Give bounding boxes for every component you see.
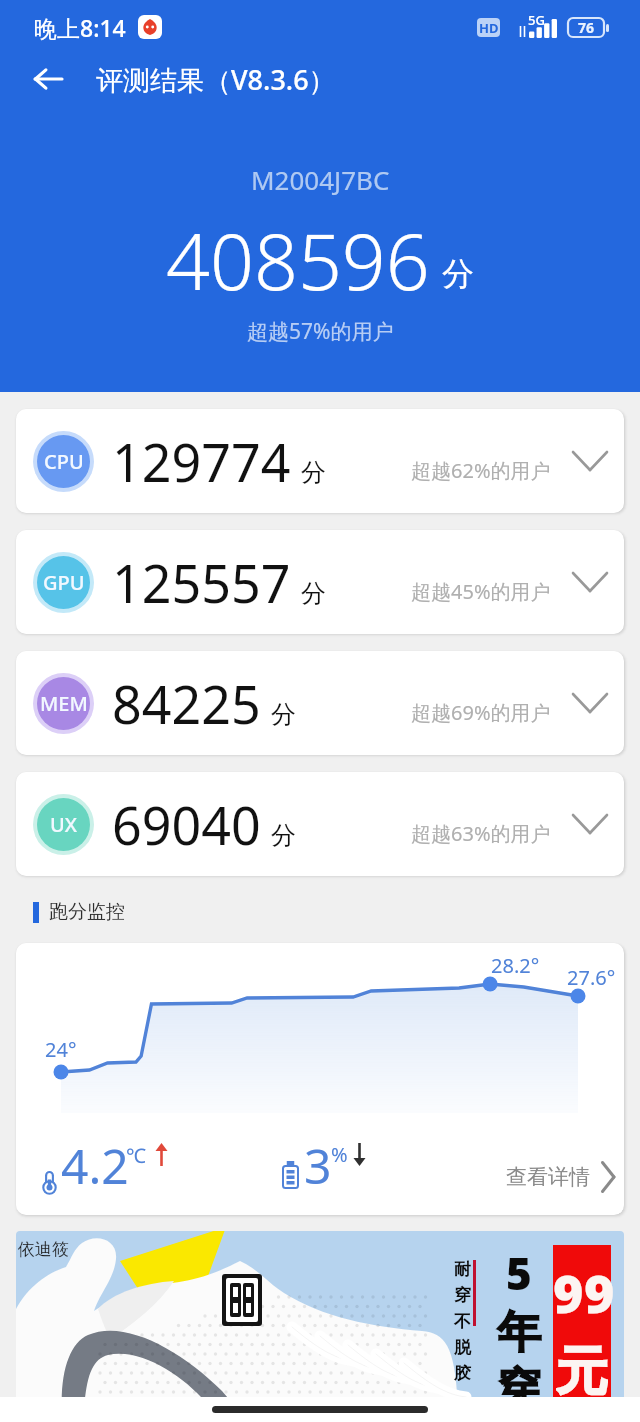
staticText: 5G [528, 11, 545, 29]
staticText: 穿 [454, 1285, 471, 1306]
staticText: 超越57%的用户 [247, 317, 394, 346]
button[interactable]: UX [16, 772, 624, 876]
staticText: 5 [506, 1243, 532, 1303]
staticText: MEM [40, 690, 88, 717]
staticText: 元 [556, 1339, 608, 1402]
staticText: 9 [584, 1257, 611, 1328]
staticText: 125557 [112, 547, 291, 618]
staticText: 查看详情 [506, 1164, 590, 1190]
staticText: M2004J7BC [251, 162, 390, 197]
staticText: 84225 [112, 668, 261, 739]
staticText: 129774 [112, 426, 291, 497]
staticText: ℃ [126, 1142, 146, 1169]
staticText: 分 [271, 820, 296, 851]
button[interactable]: GPU [16, 530, 624, 634]
staticText: 穿 [497, 1362, 541, 1402]
button[interactable]: Back [0, 50, 96, 108]
button[interactable]: 9 [16, 1231, 624, 1402]
staticText: 分 [301, 457, 326, 488]
staticText: 69040 [112, 789, 261, 860]
staticText: 76 [578, 18, 595, 37]
staticText: 4.2 [61, 1133, 129, 1198]
staticText: 超越45%的用户 [411, 578, 551, 605]
staticText: 跑分监控 [49, 900, 125, 924]
staticText: 24° [45, 1036, 77, 1063]
staticText: 分 [271, 699, 296, 730]
staticText: 分 [301, 578, 326, 609]
staticText: 年 [497, 1305, 541, 1360]
staticText: 晚上8:14 [34, 12, 126, 43]
staticText: 超越69%的用户 [411, 699, 551, 726]
staticText: 胶 [454, 1363, 471, 1384]
button[interactable]: 查看详情 [496, 1160, 624, 1203]
staticText: 分 [442, 254, 474, 294]
staticText: 28.2° [491, 952, 540, 979]
staticText: 不 [454, 1311, 471, 1332]
staticText: 27.6° [567, 964, 616, 991]
staticText: 408596 [166, 208, 430, 313]
staticText: UX [50, 811, 77, 838]
staticText: 耐 [454, 1259, 471, 1280]
staticText: 9 [553, 1257, 584, 1328]
staticText: 超越62%的用户 [411, 457, 551, 484]
staticText: HD [479, 19, 499, 37]
staticText: GPU [43, 569, 85, 596]
staticText: 脱 [454, 1337, 471, 1358]
button[interactable]: CPU [16, 409, 624, 513]
staticText: % [331, 1141, 348, 1168]
staticText: 依迪筱 [18, 1239, 69, 1260]
staticText: 评测结果（V8.3.6） [96, 61, 336, 98]
staticText: CPU [44, 448, 84, 475]
button[interactable]: MEM [16, 651, 624, 755]
staticText: 3 [304, 1133, 332, 1198]
staticText: 超越63%的用户 [411, 820, 551, 847]
